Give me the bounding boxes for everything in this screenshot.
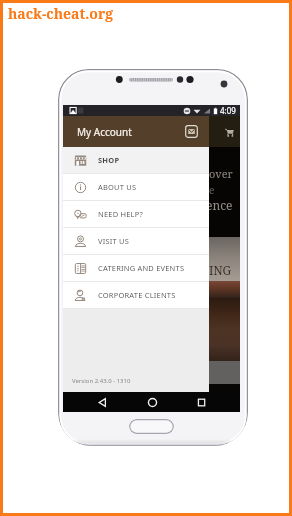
staticText: My Account: [77, 125, 132, 139]
staticText: NEED HELP?: [98, 209, 143, 219]
button[interactable]: Messages: [185, 125, 198, 138]
button[interactable]: Home: [142, 392, 162, 412]
staticText: over: [209, 166, 233, 181]
staticText: 4:09: [220, 105, 236, 116]
staticText: Version 2.43.0 - 1310: [72, 377, 131, 385]
button[interactable]: Cart: [222, 125, 236, 139]
button[interactable]: VISIT US: [63, 228, 209, 255]
button[interactable]: Back: [92, 392, 112, 412]
button[interactable]: SHOP: [63, 147, 209, 174]
staticText: ING: [209, 262, 232, 278]
button[interactable]: NEED HELP?: [63, 201, 209, 228]
staticText: CATERING AND EVENTS: [98, 263, 185, 273]
staticText: VISIT US: [98, 236, 130, 246]
button[interactable]: Recent apps: [191, 392, 211, 412]
staticText: ABOUT US: [98, 182, 137, 192]
button[interactable]: ABOUT US: [63, 174, 209, 201]
staticText: hack-cheat.org: [8, 4, 114, 23]
button[interactable]: CATERING AND EVENTS: [63, 255, 209, 282]
staticText: e: [209, 183, 215, 197]
staticText: CORPORATE CLIENTS: [98, 290, 176, 300]
button[interactable]: CORPORATE CLIENTS: [63, 282, 209, 309]
staticText: SHOP: [98, 155, 120, 165]
staticText: ence: [206, 197, 233, 213]
